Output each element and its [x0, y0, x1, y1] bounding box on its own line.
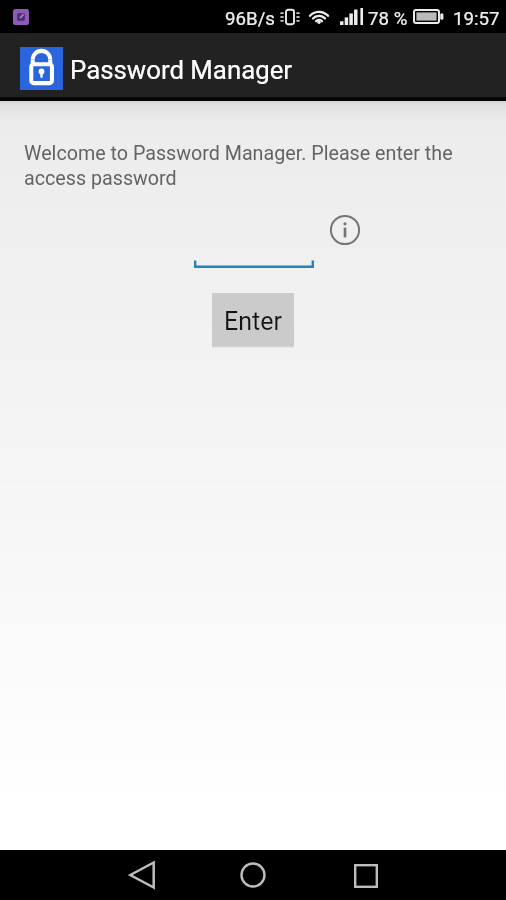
staticText: 19:57	[453, 8, 500, 30]
staticText: Enter	[224, 307, 282, 336]
button[interactable]: App icon	[20, 47, 63, 90]
button[interactable]: Info	[328, 213, 362, 247]
staticText: 78 %	[368, 8, 408, 30]
button[interactable]: Enter	[212, 293, 294, 346]
staticText: Welcome to Password Manager. Please ente…	[24, 142, 484, 190]
staticText: 96B/s	[225, 8, 276, 30]
button[interactable]: Recent apps	[342, 852, 390, 900]
button[interactable]: Back	[118, 851, 166, 899]
button[interactable]: Home	[229, 851, 277, 899]
button[interactable]: Password field	[194, 248, 314, 270]
staticText: Password Manager	[70, 55, 293, 85]
